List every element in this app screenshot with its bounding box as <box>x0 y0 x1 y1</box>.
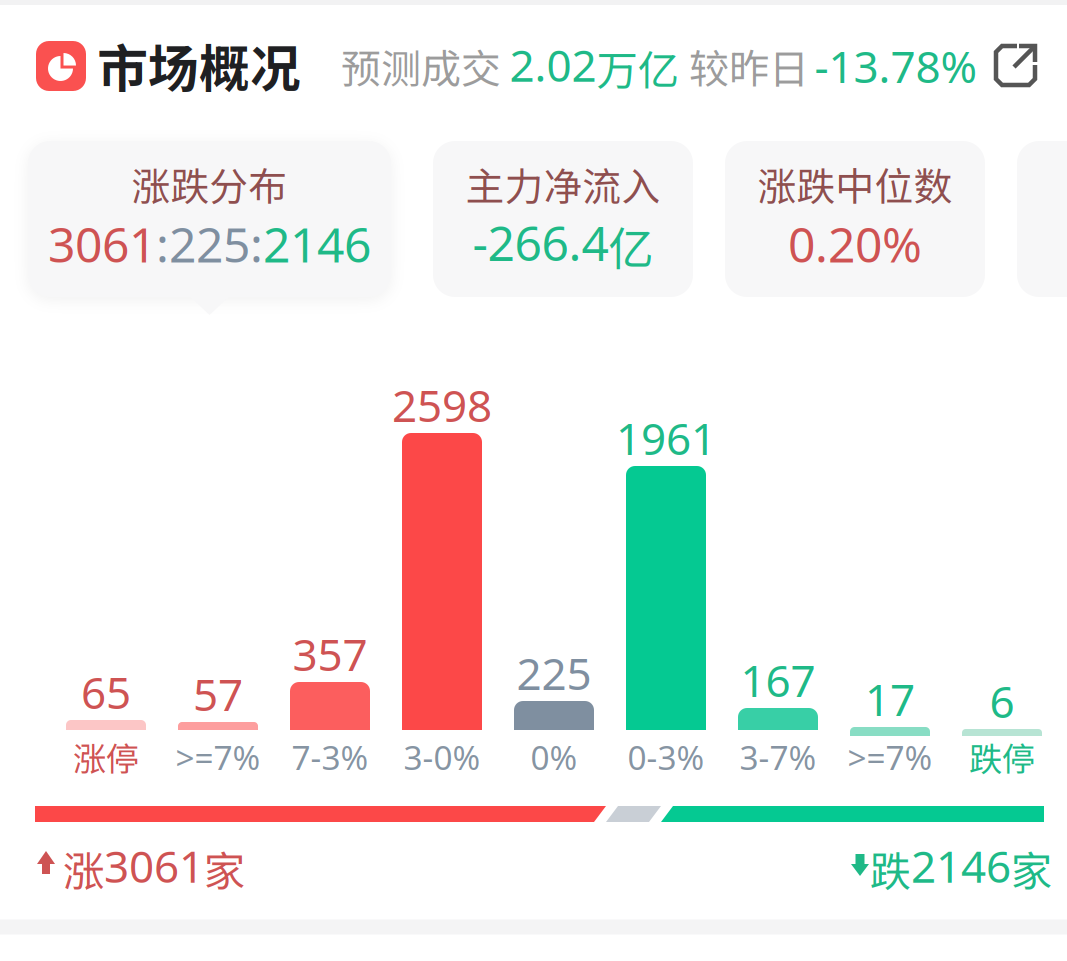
staticText: -13.78% <box>814 37 977 95</box>
staticText: 2598 <box>392 376 492 434</box>
staticText: 3-7% <box>739 735 816 779</box>
staticText: >=7% <box>175 735 260 779</box>
staticText: 17 <box>865 670 915 728</box>
staticText: 较昨日 <box>689 37 809 95</box>
staticText: >=7% <box>847 735 932 779</box>
staticText: 357 <box>292 625 367 683</box>
staticText: 2.02万亿 <box>509 35 678 96</box>
staticText: 0% <box>530 735 577 779</box>
staticText: 涨跌分布 <box>131 156 287 212</box>
button[interactable]: 涨跌中位数 <box>725 141 985 297</box>
staticText: 跌2146家 <box>870 836 1052 897</box>
staticText: 167 <box>740 651 815 709</box>
staticText: 0-3% <box>627 735 704 779</box>
staticText: :225: <box>156 212 263 276</box>
staticText: 1961 <box>616 409 716 467</box>
staticText: 65 <box>81 663 131 721</box>
staticText: 225 <box>516 644 591 702</box>
staticText: 跌停 <box>969 733 1035 781</box>
staticText: 7-3% <box>291 735 368 779</box>
button[interactable]: 打开详情 <box>991 41 1041 91</box>
staticText: 3061 <box>48 212 156 276</box>
staticText: 市场概况 <box>97 28 301 102</box>
staticText: 主力净流入 <box>465 156 660 212</box>
button[interactable]: 涨跌分布 <box>28 141 391 315</box>
staticText: 涨跌中位数 <box>757 156 952 212</box>
staticText: 6 <box>989 672 1014 730</box>
staticText: 预测成交 <box>341 37 501 95</box>
staticText: 57 <box>193 665 243 723</box>
staticText: -266.4亿 <box>472 211 653 277</box>
staticText: 2146 <box>263 212 371 276</box>
staticText: 涨停 <box>73 733 139 781</box>
staticText: 0.20% <box>788 212 922 276</box>
button[interactable]: 主力净流入 <box>433 141 693 297</box>
staticText: 涨3061家 <box>63 836 245 897</box>
staticText: 3-0% <box>403 735 480 779</box>
